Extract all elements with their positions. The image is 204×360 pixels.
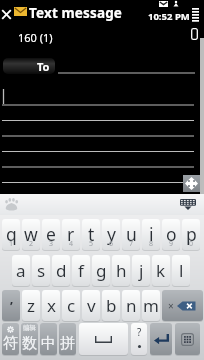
staticText: b <box>106 294 117 317</box>
staticText: s <box>37 259 46 282</box>
staticText: × <box>168 299 174 313</box>
staticText: g <box>96 259 107 282</box>
button[interactable]: l <box>172 255 190 286</box>
button[interactable]: j <box>132 255 150 286</box>
button[interactable]: v <box>82 290 100 321</box>
button[interactable]: ? <box>131 323 147 355</box>
button[interactable]: g <box>92 255 110 286</box>
staticText: y <box>107 222 116 246</box>
button[interactable]: × <box>162 290 203 321</box>
button[interactable]: z <box>22 290 40 321</box>
staticText: v <box>87 294 96 317</box>
button[interactable]: x <box>42 290 60 321</box>
button[interactable] <box>175 323 200 355</box>
staticText: c <box>67 294 76 317</box>
button[interactable]: w <box>22 219 40 250</box>
button[interactable]: s <box>32 255 50 286</box>
staticText: l <box>179 259 184 282</box>
staticText: Text message <box>29 4 123 22</box>
button[interactable]: d <box>52 255 70 286</box>
staticText: e <box>46 222 56 246</box>
staticText: n <box>126 294 137 317</box>
staticText: 5 <box>89 239 94 249</box>
staticText: h <box>116 259 127 282</box>
button[interactable]: h <box>112 255 130 286</box>
staticText: u <box>126 222 137 246</box>
staticText: f <box>78 259 84 282</box>
staticText: j <box>139 259 144 282</box>
staticText: 10:52 PM <box>148 10 190 23</box>
staticText: 2 <box>29 239 34 249</box>
button[interactable]: i <box>142 219 160 250</box>
button[interactable]: ’ <box>2 290 20 321</box>
button[interactable]: q <box>2 219 20 250</box>
button[interactable]: 编辑 <box>21 323 38 355</box>
button[interactable]: e <box>42 219 60 250</box>
staticText: x <box>47 294 56 317</box>
button[interactable]: b <box>102 290 120 321</box>
staticText: k <box>156 259 166 282</box>
staticText: m <box>143 294 159 317</box>
staticText: p <box>186 222 197 246</box>
button[interactable]: k <box>152 255 170 286</box>
staticText: 编辑 <box>23 324 36 332</box>
button[interactable]: 中 <box>40 323 57 355</box>
staticText: ’ <box>10 297 13 315</box>
staticText: q <box>6 222 17 246</box>
button[interactable]: y <box>102 219 120 250</box>
staticText: ? <box>137 325 142 339</box>
button[interactable]: t <box>82 219 100 250</box>
button[interactable]: r <box>62 219 80 250</box>
staticText: d <box>56 259 67 282</box>
button[interactable]: a <box>12 255 30 286</box>
staticText: w <box>24 222 38 246</box>
staticText: 0 <box>189 239 194 249</box>
button[interactable]: o <box>162 219 180 250</box>
staticText: 9 <box>169 239 174 249</box>
button[interactable]: 符 <box>2 323 19 355</box>
staticText: 8 <box>149 239 154 249</box>
staticText: o <box>166 222 177 246</box>
staticText: a <box>16 259 26 282</box>
staticText: 1 <box>9 239 14 249</box>
button[interactable]: f <box>72 255 90 286</box>
staticText: 符 <box>3 334 18 353</box>
staticText: z <box>27 294 35 317</box>
staticText: 3 <box>49 239 54 249</box>
button[interactable]: n <box>122 290 140 321</box>
button[interactable]: 拼 <box>59 323 76 355</box>
staticText: i <box>149 222 154 246</box>
staticText: r <box>67 222 75 246</box>
button[interactable]: u <box>122 219 140 250</box>
button[interactable]: c <box>62 290 80 321</box>
staticText: To <box>37 59 50 74</box>
button[interactable]: m <box>142 290 160 321</box>
staticText: 160 (1) <box>18 30 53 45</box>
button[interactable]: Hide keyboard <box>180 199 196 210</box>
button[interactable]: To <box>3 58 55 74</box>
staticText: 中 <box>41 334 56 353</box>
button[interactable]: Input method settings <box>4 197 19 212</box>
other: Signal strength <box>192 8 199 23</box>
staticText: 数 <box>22 334 37 353</box>
button[interactable]: p <box>182 219 200 250</box>
staticText: t <box>88 222 95 246</box>
staticText: 4 <box>69 239 74 249</box>
button[interactable] <box>150 323 172 355</box>
staticText: 拼 <box>60 334 75 353</box>
staticText: 6 <box>109 239 114 249</box>
other: Battery <box>191 28 198 40</box>
button[interactable]: Move keyboard <box>183 175 200 192</box>
button[interactable]: Close <box>1 9 12 20</box>
staticText: 7 <box>129 239 134 249</box>
button[interactable] <box>79 323 128 355</box>
